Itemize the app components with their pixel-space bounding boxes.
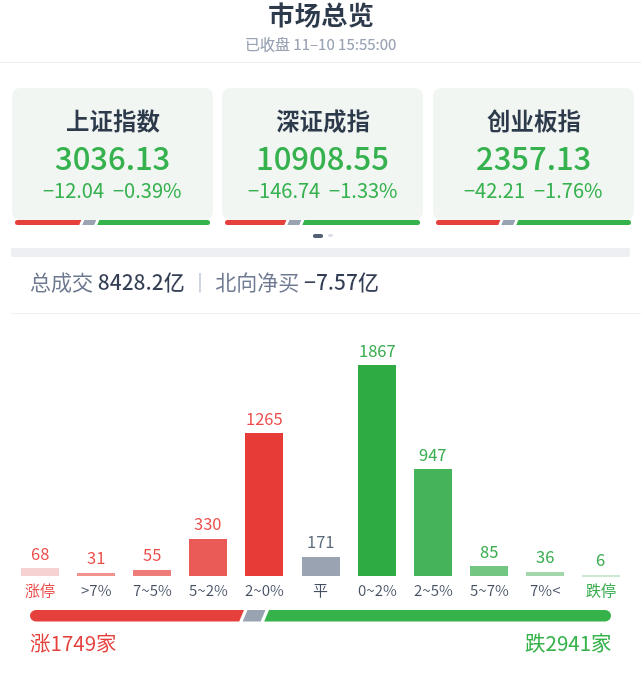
staticText: 0~2% bbox=[358, 579, 397, 601]
staticText: 85 bbox=[480, 539, 499, 563]
staticText: 2~0% bbox=[245, 579, 284, 601]
staticText: 330 bbox=[194, 511, 222, 535]
staticText: 68 bbox=[31, 541, 50, 565]
staticText: 涨停 bbox=[25, 579, 56, 601]
staticText: 已收盘 11–10 15:55:00 bbox=[245, 33, 397, 55]
staticText: 5~7% bbox=[470, 579, 509, 601]
staticText: 总成交 8428.2亿 丨 北向净买 −7.57亿 bbox=[30, 266, 380, 296]
button[interactable]: 上证指数 bbox=[12, 88, 213, 225]
staticText: 市场总览 bbox=[268, 0, 374, 32]
staticText: 2~5% bbox=[414, 579, 453, 601]
staticText: 跌2941家 bbox=[525, 627, 612, 657]
staticText: 1867 bbox=[359, 338, 396, 362]
staticText: 3036.13 bbox=[55, 134, 171, 178]
staticText: −146.74 −1.33% bbox=[248, 175, 398, 204]
staticText: 深证成指 bbox=[276, 103, 370, 137]
staticText: 创业板指 bbox=[487, 103, 581, 137]
staticText: 55 bbox=[143, 542, 162, 566]
staticText: 7~5% bbox=[133, 579, 172, 601]
button[interactable]: 深证成指 bbox=[222, 88, 423, 225]
staticText: 平 bbox=[313, 579, 329, 601]
staticText: 947 bbox=[419, 442, 447, 466]
button[interactable]: 总成交 8428.2亿 丨 北向净买 −7.57亿 bbox=[30, 261, 590, 301]
staticText: 跌停 bbox=[586, 579, 617, 601]
staticText: 5~2% bbox=[189, 579, 228, 601]
staticText: 31 bbox=[87, 545, 106, 569]
staticText: 1265 bbox=[246, 406, 283, 430]
staticText: 涨1749家 bbox=[30, 627, 117, 657]
staticText: 7%< bbox=[530, 579, 561, 601]
staticText: 10908.55 bbox=[256, 134, 389, 178]
staticText: 171 bbox=[307, 529, 335, 553]
staticText: 2357.13 bbox=[476, 134, 592, 178]
staticText: 36 bbox=[536, 544, 555, 568]
staticText: −12.04 −0.39% bbox=[43, 175, 182, 204]
staticText: 6 bbox=[596, 547, 606, 571]
staticText: −42.21 −1.76% bbox=[464, 175, 603, 204]
staticText: 上证指数 bbox=[66, 103, 160, 137]
button[interactable]: 创业板指 bbox=[433, 88, 634, 225]
staticText: >7% bbox=[81, 579, 112, 601]
